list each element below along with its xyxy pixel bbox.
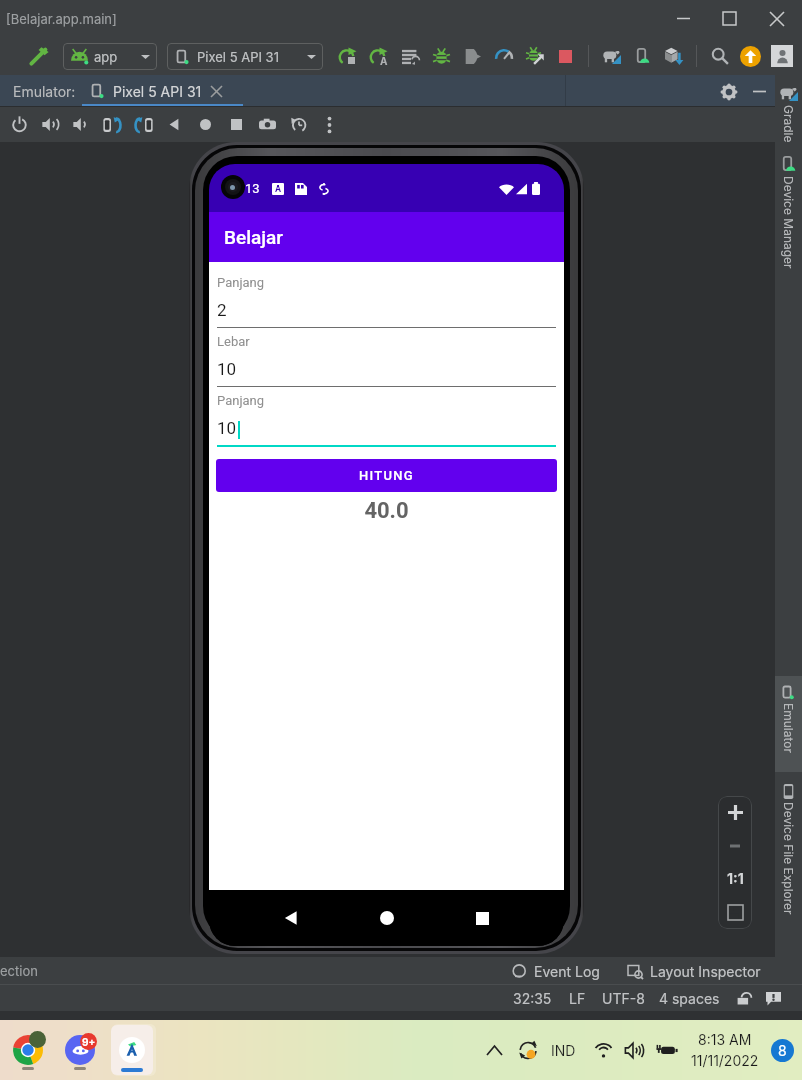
button[interactable]: Volume up <box>35 107 66 142</box>
staticText: app <box>94 49 118 65</box>
button[interactable]: SDK Manager <box>658 41 689 71</box>
button[interactable]: Close <box>752 0 802 37</box>
staticText: 1:1 <box>727 870 744 887</box>
staticText: 8:13 AM <box>698 1031 752 1048</box>
staticText: 8 <box>778 1042 787 1059</box>
button[interactable]: Profiler <box>488 41 519 71</box>
button[interactable]: Stop <box>550 41 581 71</box>
staticText: ection <box>0 963 38 979</box>
button[interactable]: Layout Inspector <box>628 963 761 980</box>
button[interactable]: Update <box>740 46 761 67</box>
button[interactable]: Search <box>704 41 735 71</box>
button[interactable]: Build <box>24 41 54 71</box>
button[interactable]: Minimize <box>660 0 706 37</box>
staticText: UTF-8 <box>602 990 645 1007</box>
staticText: 4 spaces <box>659 990 720 1007</box>
button[interactable]: Device File Explorer <box>775 779 802 922</box>
button[interactable]: Recents <box>462 898 502 938</box>
staticText: Panjang <box>217 275 265 290</box>
button[interactable]: Pixel 5 API 31 <box>82 75 243 107</box>
button[interactable]: Restore layout <box>395 41 426 71</box>
button[interactable]: Device Manager <box>775 151 802 276</box>
staticText: 13 <box>245 181 260 196</box>
button[interactable]: Home <box>190 107 221 142</box>
button[interactable]: Emulator <box>775 680 802 760</box>
button[interactable]: Power <box>4 107 35 142</box>
button[interactable]: Notifications <box>771 1039 794 1062</box>
button[interactable]: Sync <box>515 1037 541 1063</box>
staticText: IND <box>551 1042 576 1059</box>
button[interactable]: AVD Manager <box>627 41 658 71</box>
staticText: Lebar <box>217 334 250 349</box>
staticText: 40.0 <box>209 498 564 524</box>
button[interactable]: Event Log <box>512 963 600 980</box>
button[interactable]: Volume down <box>66 107 97 142</box>
button[interactable]: Settings <box>713 76 744 107</box>
button[interactable]: Maximize <box>706 0 752 37</box>
staticText: Pixel 5 API 31 <box>197 49 279 65</box>
button[interactable]: app <box>63 43 157 70</box>
button[interactable]: HITUNG <box>216 459 557 492</box>
staticText: 11/11/2022 <box>691 1052 759 1069</box>
button[interactable]: Discord <box>54 1024 106 1076</box>
staticText: A <box>380 55 388 67</box>
button[interactable]: Gradle <box>775 79 802 150</box>
button[interactable]: Back <box>159 107 190 142</box>
button[interactable]: Fit to screen <box>718 895 752 929</box>
button[interactable]: Rotate left <box>97 107 128 142</box>
staticText: Emulator: <box>13 83 76 100</box>
staticText: Belajar <box>224 226 283 248</box>
button[interactable]: Overview <box>221 107 252 142</box>
staticText: LF <box>569 990 586 1007</box>
button[interactable]: Zoom out <box>718 829 752 862</box>
staticText: HITUNG <box>359 468 415 483</box>
button[interactable]: Gradle sync <box>596 41 627 71</box>
button[interactable]: Zoom in <box>718 796 752 829</box>
staticText: 2 <box>217 300 227 320</box>
button[interactable]: Account <box>771 45 793 67</box>
staticText: A <box>275 184 282 195</box>
button[interactable]: Android Studio <box>106 1024 158 1076</box>
button[interactable]: History <box>283 107 314 142</box>
staticText: Event Log <box>534 963 600 980</box>
button[interactable]: More <box>314 107 345 142</box>
button[interactable]: Pixel 5 API 31 <box>167 43 323 70</box>
staticText: Pixel 5 API 31 <box>113 83 202 100</box>
button[interactable]: Back <box>271 898 311 938</box>
button[interactable]: Profile <box>457 41 488 71</box>
button[interactable]: Hide <box>744 76 775 107</box>
button[interactable]: Lock <box>737 991 752 1006</box>
button[interactable]: Notifications <box>766 991 781 1006</box>
button[interactable]: Screenshot <box>252 107 283 142</box>
button[interactable]: Show hidden icons <box>481 1037 507 1063</box>
staticText: 10 <box>217 359 237 379</box>
staticText: Layout Inspector <box>650 963 761 980</box>
staticText: [Belajar.app.main] <box>6 11 117 27</box>
button[interactable]: Rerun all <box>364 41 395 71</box>
button[interactable]: Debug <box>426 41 457 71</box>
button[interactable]: Attach debugger <box>519 41 550 71</box>
button[interactable]: Rerun <box>333 41 364 71</box>
staticText: 10 <box>217 418 237 438</box>
button[interactable]: Chrome <box>2 1024 54 1076</box>
staticText: 32:35 <box>513 990 552 1007</box>
button[interactable]: Home <box>367 898 407 938</box>
button[interactable]: Rotate right <box>128 107 159 142</box>
staticText: Panjang <box>217 393 265 408</box>
staticText: 9+ <box>82 1036 96 1048</box>
button[interactable]: Actual size <box>718 862 752 895</box>
